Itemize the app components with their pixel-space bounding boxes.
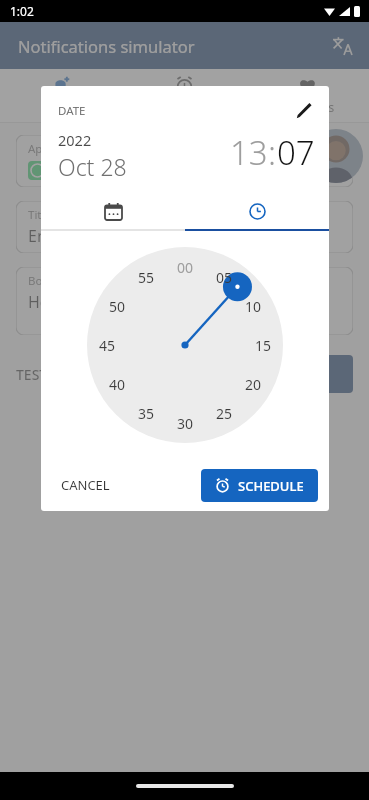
button[interactable]: Clock <box>185 193 329 229</box>
button[interactable]: Title <box>16 201 353 253</box>
button[interactable]: Application <box>16 135 353 187</box>
staticText: Favorites <box>281 99 335 116</box>
staticText: Hello <box>28 291 67 313</box>
staticText: 05 <box>216 268 233 287</box>
button[interactable]: Edit <box>291 98 317 124</box>
staticText: : <box>268 130 277 175</box>
staticText: CANCEL <box>61 476 110 494</box>
staticText: Body <box>28 273 56 289</box>
staticText: 00 <box>177 258 194 277</box>
button[interactable] <box>291 355 353 393</box>
staticText: 45 <box>99 336 116 355</box>
button[interactable]: 13 <box>230 130 268 175</box>
staticText: Notifications simulator <box>18 35 195 57</box>
button[interactable]: New <box>0 69 123 122</box>
staticText: 50 <box>109 297 126 316</box>
staticText: 2022 <box>58 130 92 150</box>
staticText: DATE <box>58 103 86 119</box>
button[interactable]: Scheduled <box>123 69 246 122</box>
staticText: Enter title <box>28 225 102 247</box>
button[interactable]: Favorites <box>246 69 369 122</box>
staticText: Title <box>28 207 51 223</box>
staticText: SCHEDULE <box>238 477 304 495</box>
staticText: 10 <box>245 297 262 316</box>
staticText: 55 <box>138 268 155 287</box>
button[interactable]: SCHEDULE <box>201 469 318 502</box>
staticText: Oct 28 <box>58 151 127 182</box>
staticText: 30 <box>177 414 194 433</box>
button[interactable]: Translate <box>327 31 357 61</box>
button[interactable]: Calendar <box>41 193 185 229</box>
staticText: New <box>48 99 75 116</box>
button[interactable]: CANCEL <box>49 468 122 502</box>
staticText: TEST <box>16 365 48 384</box>
staticText: 15 <box>255 336 272 355</box>
staticText: 1:02 <box>10 3 34 19</box>
button[interactable] <box>309 129 363 183</box>
staticText: 40 <box>109 375 126 394</box>
staticText: 07 <box>277 130 315 175</box>
staticText: 35 <box>138 404 155 423</box>
staticText: Application <box>28 141 89 157</box>
staticText: WhatsApp <box>57 159 135 181</box>
staticText: 13 <box>230 130 268 175</box>
button[interactable]: 07 <box>277 130 315 175</box>
button[interactable]: Body <box>16 267 353 335</box>
staticText: 20 <box>245 375 262 394</box>
staticText: 25 <box>216 404 233 423</box>
